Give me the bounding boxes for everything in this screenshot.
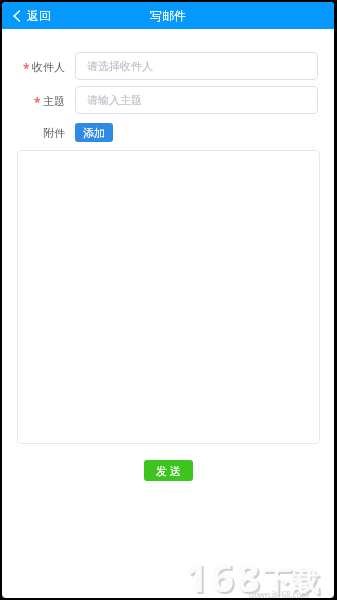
staticText: 写邮件 <box>150 8 186 23</box>
staticText: 168 <box>185 549 263 598</box>
staticText: * <box>34 94 41 110</box>
staticText: 下载 <box>265 566 321 598</box>
button[interactable]: 添加 <box>75 123 113 142</box>
button[interactable] <box>17 150 320 444</box>
button[interactable]: 返回 <box>13 8 51 23</box>
staticText: 主题 <box>43 94 65 108</box>
staticText: 发 送 <box>156 463 181 478</box>
staticText: 168 <box>187 551 265 598</box>
staticText: down.it168.com <box>249 589 309 598</box>
staticText: 下载 <box>263 564 319 598</box>
button[interactable]: 发 送 <box>144 460 193 481</box>
staticText: 返回 <box>27 8 51 23</box>
staticText: * <box>23 60 30 76</box>
staticText: 请选择收件人 <box>87 59 153 73</box>
staticText: 请输入主题 <box>87 93 142 107</box>
staticText: 附件 <box>43 126 65 140</box>
button[interactable]: 请输入主题 <box>75 86 318 114</box>
staticText: 收件人 <box>32 60 65 74</box>
staticText: 添加 <box>83 126 105 140</box>
button[interactable]: 请选择收件人 <box>75 52 318 80</box>
